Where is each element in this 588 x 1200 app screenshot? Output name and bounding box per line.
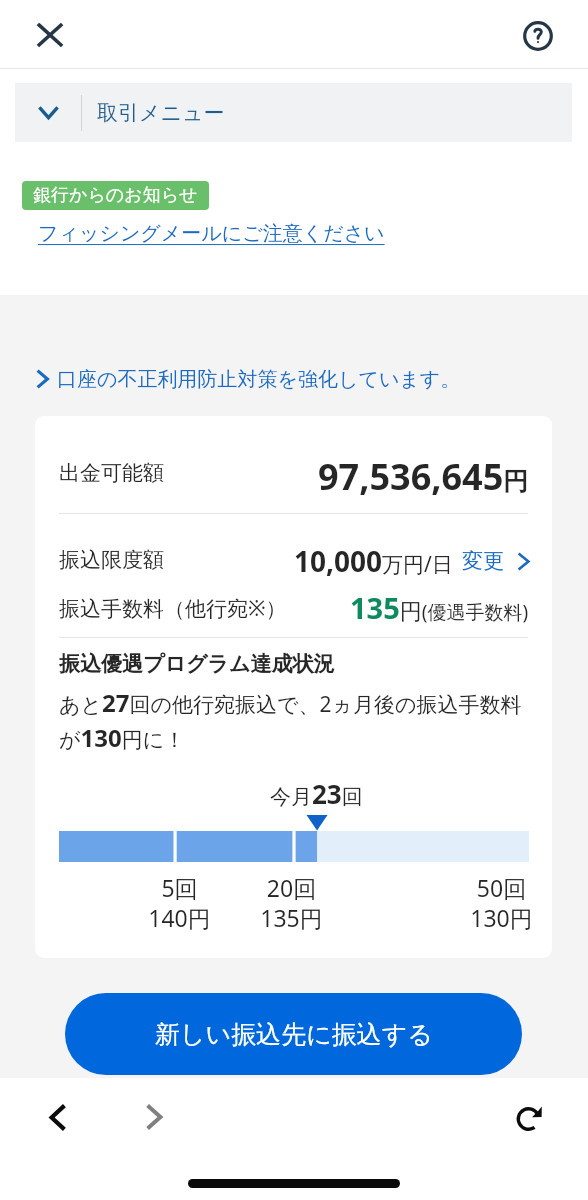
staticText: 20回 135円 [260,872,323,934]
staticText: 10,000万円/日 [294,542,453,580]
button[interactable]: 口座の不正利用防止対策を強化しています。 [37,364,461,394]
staticText: 97,536,645円 [318,452,529,501]
staticText: あと27回の他行宛振込で、2ヵ月後の振込手数料が130円に！ [59,686,529,754]
staticText: 振込限度額 [59,547,164,573]
staticText: 50回 130円 [470,872,533,934]
staticText: フィッシングメールにご注意ください [38,221,385,246]
staticText: 5回 140円 [148,872,211,934]
staticText: 口座の不正利用防止対策を強化しています。 [57,367,461,392]
staticText: 振込優遇プログラム達成状況 [59,651,335,677]
button[interactable]: 新しい振込先に振込する [65,993,522,1075]
button[interactable]: フィッシングメールにご注意ください [38,221,385,246]
staticText: 銀行からのお知らせ [33,184,198,207]
staticText: 取引メニュー [97,100,225,126]
button[interactable]: 再読み込み [507,1096,551,1140]
staticText: 変更 [462,548,504,574]
button[interactable]: 取引メニュー [15,83,572,142]
staticText: 振込手数料（他行宛※） [59,594,287,623]
button[interactable]: ヘルプ [516,14,560,58]
staticText: 新しい振込先に振込する [155,1019,433,1050]
staticText: 出金可能額 [59,460,164,486]
button[interactable]: 戻る [36,1095,80,1139]
staticText: 今月23回 [270,776,363,811]
staticText: 135円(優遇手数料) [350,588,529,627]
button[interactable]: 変更 [462,548,529,574]
button[interactable]: 閉じる [28,13,72,57]
button[interactable]: 進む [132,1095,176,1139]
